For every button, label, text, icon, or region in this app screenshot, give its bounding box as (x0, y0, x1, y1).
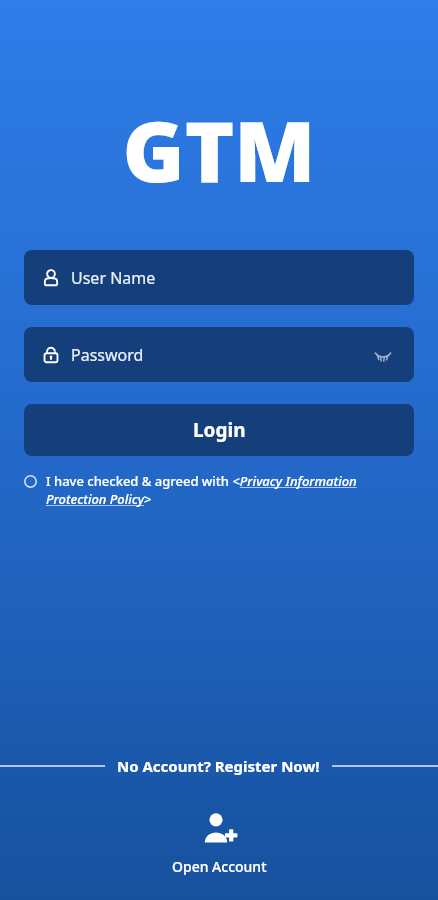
staticText: Login (193, 417, 246, 443)
staticText: User Name (71, 267, 156, 289)
button[interactable]: No Account? Register Now! (105, 756, 332, 776)
button[interactable]: Login (24, 404, 414, 456)
staticText: I have checked & agreed with <Privacy In… (46, 472, 414, 508)
button[interactable]: Password (24, 327, 414, 382)
button[interactable]: I have checked & agreed with <Privacy In… (24, 472, 414, 508)
staticText: Password (71, 344, 144, 366)
staticText: GTM (122, 92, 316, 206)
staticText: Open Account (172, 857, 267, 876)
button[interactable]: Show password (368, 340, 398, 370)
button[interactable]: Open Account (154, 805, 285, 880)
button[interactable]: User Name (24, 250, 414, 305)
